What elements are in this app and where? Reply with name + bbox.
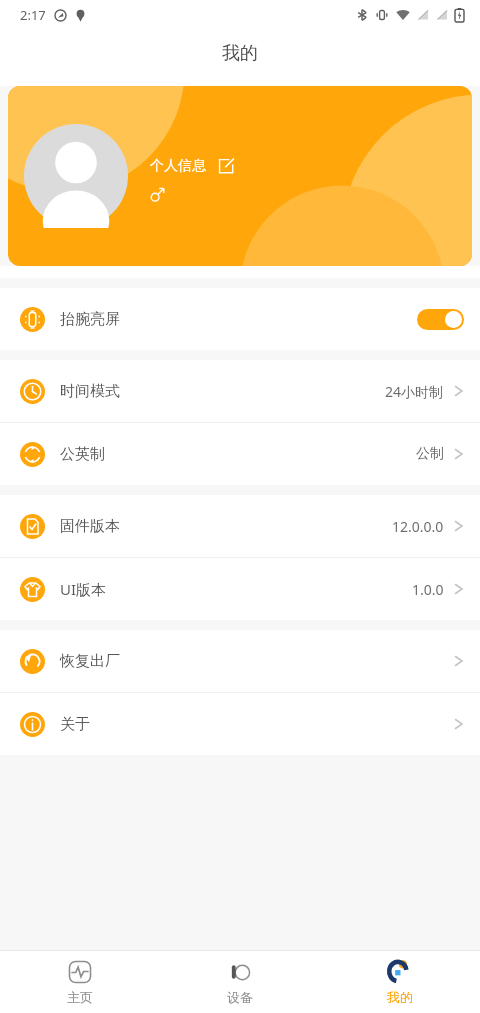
staticText: 我的 [222, 42, 258, 65]
button[interactable]: 固件版本 [0, 495, 480, 557]
button[interactable]: 我的 [320, 951, 480, 1013]
button[interactable]: 关于 [0, 693, 480, 755]
button[interactable]: 时间模式 [0, 360, 480, 422]
button[interactable]: UI版本 [0, 558, 480, 620]
button[interactable]: 恢复出厂 [0, 630, 480, 692]
button[interactable]: 抬腕亮屏 [0, 288, 480, 350]
staticText: 个人信息 [150, 157, 206, 175]
staticText: 关于 [60, 715, 90, 734]
staticText: 2:17 [20, 6, 46, 24]
button[interactable]: 抬腕亮屏开关 [417, 309, 464, 330]
staticText: 主页 [67, 989, 93, 1005]
staticText: 固件版本 [60, 517, 120, 536]
staticText: 公制 [416, 445, 444, 463]
staticText: 24小时制 [385, 382, 444, 401]
button[interactable]: 设备 [160, 951, 320, 1013]
staticText: 12.0.0.0 [392, 517, 444, 536]
staticText: 恢复出厂 [60, 652, 120, 671]
button[interactable]: 个人信息 [8, 86, 472, 266]
staticText: 1.0.0 [412, 580, 444, 599]
button[interactable]: 公英制 [0, 423, 480, 485]
staticText: 公英制 [60, 445, 105, 464]
staticText: 时间模式 [60, 382, 120, 401]
button[interactable]: 主页 [0, 951, 160, 1013]
staticText: 设备 [227, 989, 253, 1005]
staticText: 我的 [387, 989, 413, 1005]
button[interactable]: 编辑 [218, 158, 234, 174]
staticText: UI版本 [60, 579, 107, 599]
staticText: 抬腕亮屏 [60, 310, 120, 329]
